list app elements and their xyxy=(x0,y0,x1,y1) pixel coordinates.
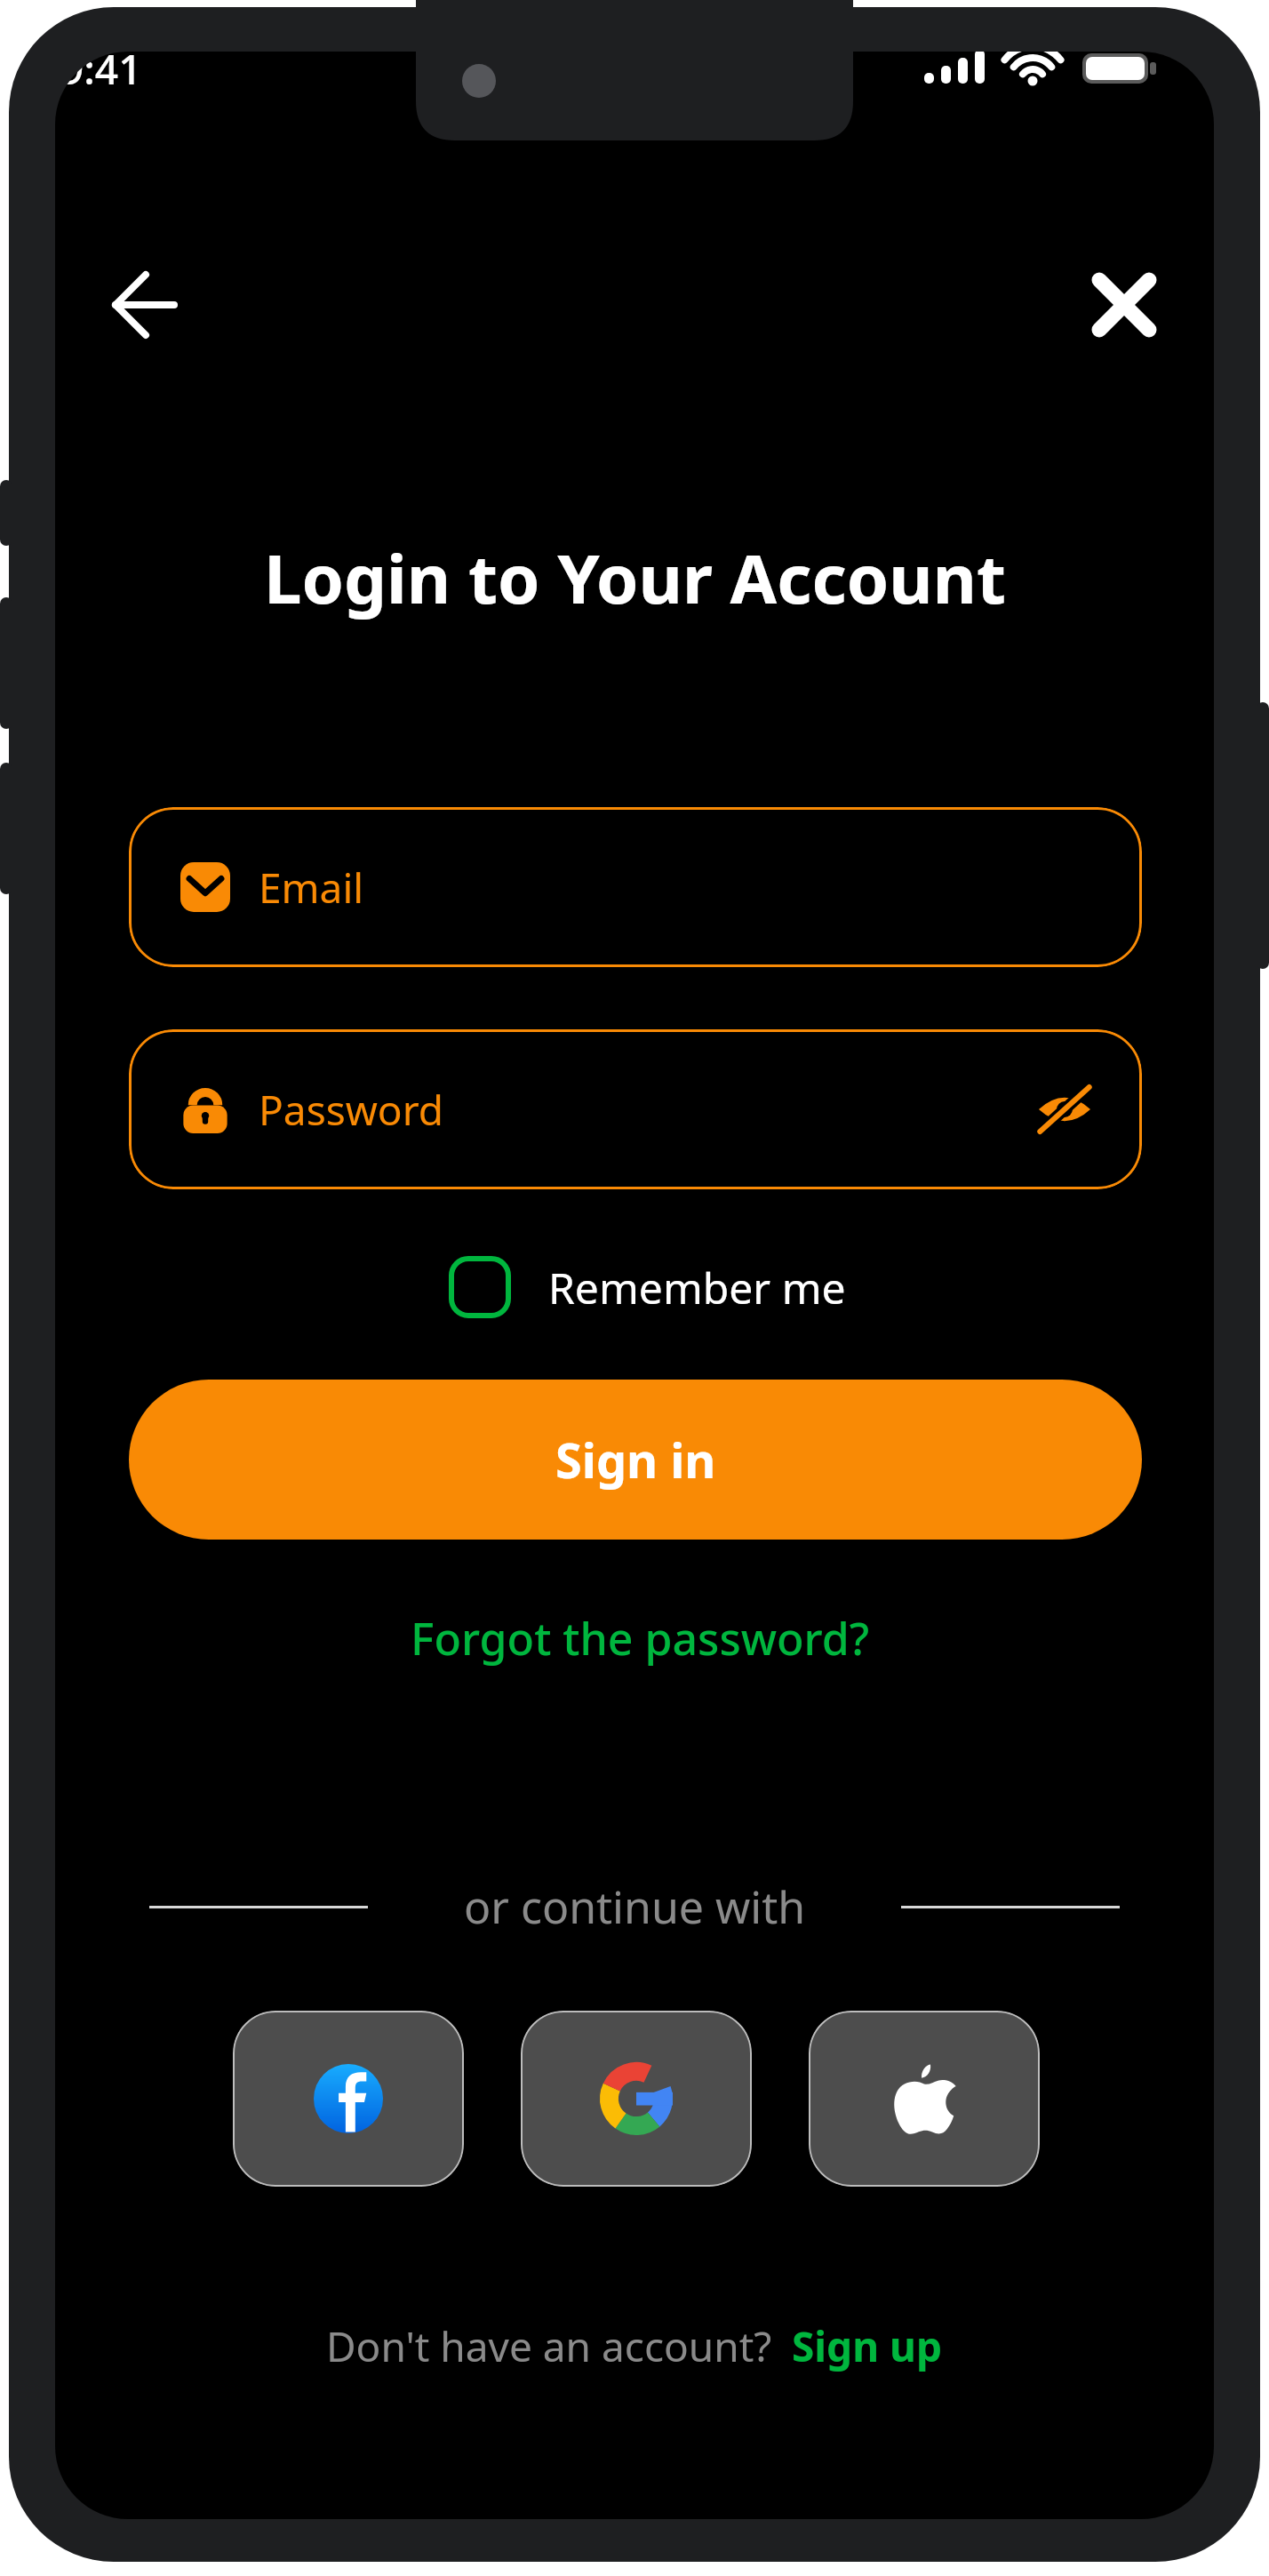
staticText: Don't have an account? xyxy=(326,2318,772,2374)
staticText: Login to Your Account xyxy=(264,532,1006,624)
button[interactable]: Back xyxy=(96,256,194,354)
button[interactable]: Forgot the password? xyxy=(391,1598,889,1678)
staticText: Forgot the password? xyxy=(411,1608,870,1668)
button[interactable]: Email xyxy=(129,807,1142,967)
staticText: Remember me xyxy=(548,1259,846,1316)
button[interactable]: Remember me xyxy=(449,1244,846,1330)
button[interactable]: Sign up xyxy=(792,2318,943,2374)
staticText: or continue with xyxy=(464,1876,806,1937)
button[interactable]: Close xyxy=(1075,256,1173,354)
button[interactable]: Sign in xyxy=(129,1380,1142,1540)
staticText: Sign in xyxy=(555,1427,716,1492)
button[interactable]: Show password xyxy=(1021,1066,1108,1153)
button[interactable]: Sign in with Google xyxy=(521,2011,752,2187)
button[interactable]: Password xyxy=(129,1029,1142,1189)
staticText: Email xyxy=(259,860,364,916)
staticText: Password xyxy=(259,1082,444,1138)
button[interactable]: Sign in with Apple xyxy=(809,2011,1040,2187)
staticText: Sign up xyxy=(792,2318,943,2374)
button[interactable]: Sign in with Facebook xyxy=(233,2011,464,2187)
staticText: 9:41 xyxy=(60,52,142,97)
